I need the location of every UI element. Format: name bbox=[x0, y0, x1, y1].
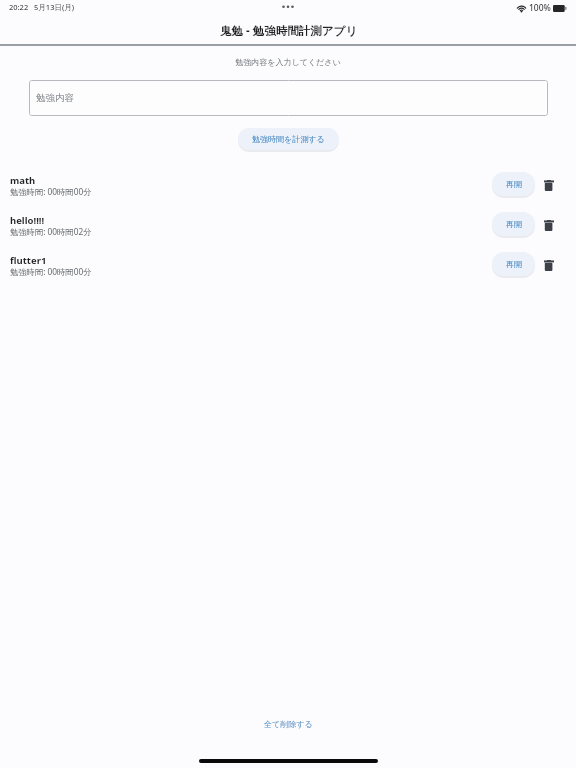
button[interactable]: Delete bbox=[540, 175, 558, 193]
staticText: 勉強時間: 00時間02分 bbox=[10, 226, 92, 237]
staticText: 100% bbox=[529, 2, 551, 14]
button[interactable]: 勉強内容 bbox=[29, 80, 548, 116]
button[interactable]: Delete bbox=[540, 215, 558, 233]
staticText: flutter1 bbox=[10, 254, 47, 267]
staticText: 勉強内容を入力してください bbox=[0, 57, 576, 67]
staticText: 再開 bbox=[506, 219, 522, 229]
staticText: 勉強時間: 00時間00分 bbox=[10, 266, 92, 277]
staticText: 再開 bbox=[506, 259, 522, 269]
button[interactable]: 再開 bbox=[492, 172, 535, 196]
staticText: 20:22 5月13日(月) bbox=[9, 2, 75, 12]
button[interactable]: 全て削除する bbox=[0, 714, 576, 734]
staticText: 再開 bbox=[506, 179, 522, 189]
staticText: 鬼勉 - 勉強時間計測アプリ bbox=[220, 23, 357, 39]
button[interactable]: 再開 bbox=[492, 252, 535, 276]
staticText: 全て削除する bbox=[264, 719, 313, 729]
button[interactable]: 勉強時間を計測する bbox=[238, 128, 339, 150]
button[interactable]: Delete bbox=[540, 255, 558, 273]
staticText: hello!!!! bbox=[10, 214, 45, 227]
staticText: 勉強内容 bbox=[36, 92, 74, 104]
staticText: 勉強時間を計測する bbox=[252, 134, 325, 144]
staticText: math bbox=[10, 174, 36, 187]
button[interactable]: 再開 bbox=[492, 212, 535, 236]
staticText: 勉強時間: 00時間00分 bbox=[10, 186, 92, 197]
